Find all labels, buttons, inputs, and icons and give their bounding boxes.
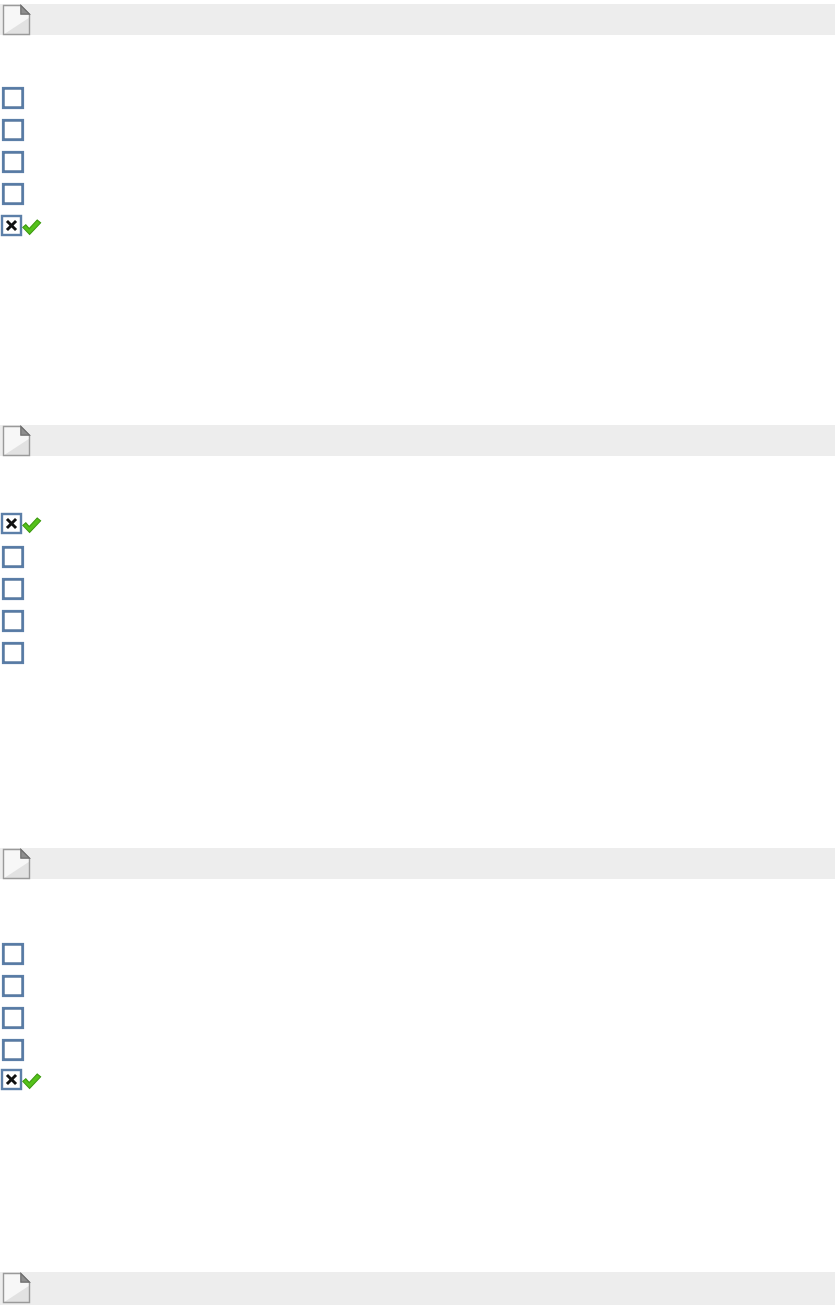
button[interactable]: Checkbox — [3, 611, 23, 631]
button[interactable]: Checkbox — [3, 88, 23, 108]
button[interactable]: Selected — [22, 1073, 41, 1089]
button[interactable]: Missing image — [0, 4, 835, 35]
button[interactable]: Checkbox — [3, 152, 23, 172]
button[interactable]: Checkbox — [3, 944, 23, 964]
other: Missing image — [3, 1273, 30, 1303]
button[interactable]: Broken image — [2, 216, 21, 235]
button[interactable]: Checkbox — [3, 643, 23, 663]
button[interactable]: Checkbox — [3, 1040, 23, 1060]
button[interactable]: Checkbox — [3, 184, 23, 204]
button[interactable]: Checkbox — [3, 579, 23, 599]
other: Missing image — [3, 849, 30, 879]
other: Missing image — [3, 5, 30, 35]
button[interactable]: Broken image — [2, 514, 21, 533]
button[interactable]: Selected — [22, 219, 41, 235]
other: Missing image — [3, 426, 30, 456]
button[interactable]: Checkbox — [3, 120, 23, 140]
button[interactable]: Selected — [22, 517, 41, 533]
button[interactable]: Broken image — [2, 1070, 21, 1089]
button[interactable]: Missing image — [0, 848, 835, 879]
button[interactable]: Checkbox — [3, 976, 23, 996]
button[interactable]: Missing image — [0, 425, 835, 456]
button[interactable]: Checkbox — [3, 547, 23, 567]
button[interactable]: Missing image — [0, 1272, 835, 1305]
button[interactable]: Checkbox — [3, 1008, 23, 1028]
